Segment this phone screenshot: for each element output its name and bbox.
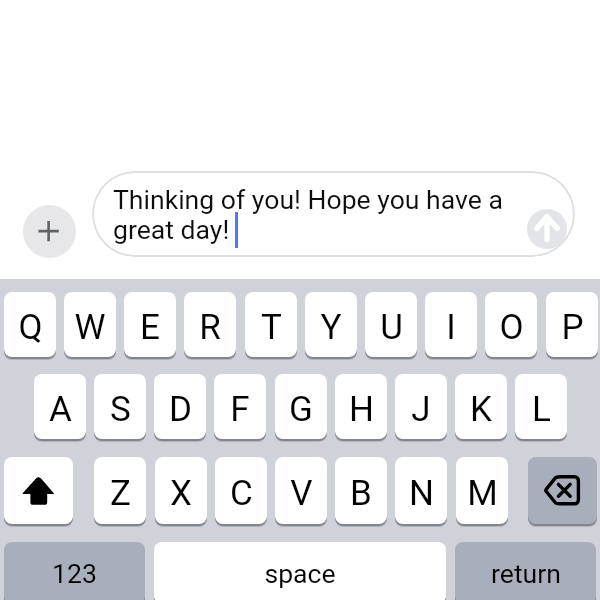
staticText: I xyxy=(446,307,456,348)
button[interactable]: Z xyxy=(94,457,146,524)
button[interactable]: S xyxy=(94,374,146,439)
button[interactable]: R xyxy=(184,292,236,357)
button[interactable]: Backspace xyxy=(528,457,597,524)
button[interactable]: Q xyxy=(4,292,56,357)
button[interactable]: X xyxy=(155,457,207,524)
button[interactable]: W xyxy=(64,292,116,357)
staticText: E xyxy=(140,307,160,348)
button[interactable]: P xyxy=(546,292,598,357)
staticText: space xyxy=(264,558,336,589)
staticText: B xyxy=(350,473,372,514)
button[interactable]: U xyxy=(365,292,417,357)
staticText: O xyxy=(499,307,524,348)
button[interactable]: L xyxy=(515,374,567,439)
button[interactable]: N xyxy=(395,457,447,524)
button[interactable]: M xyxy=(456,457,508,524)
staticText: A xyxy=(49,389,72,430)
staticText: R xyxy=(199,307,221,348)
button[interactable]: G xyxy=(275,374,327,439)
button[interactable]: D xyxy=(154,374,206,439)
staticText: F xyxy=(230,389,250,430)
button[interactable]: Thinking of you! Hope you have a great d… xyxy=(92,171,575,257)
staticText: K xyxy=(470,389,492,430)
button[interactable]: F xyxy=(214,374,266,439)
button[interactable]: C xyxy=(215,457,267,524)
button[interactable]: Send xyxy=(527,209,567,249)
button[interactable]: A xyxy=(34,374,86,439)
staticText: T xyxy=(261,307,282,348)
staticText: Q xyxy=(18,307,43,348)
staticText: Z xyxy=(110,473,131,514)
button[interactable]: B xyxy=(335,457,387,524)
button[interactable]: I xyxy=(425,292,477,357)
button[interactable]: O xyxy=(485,292,537,357)
staticText: P xyxy=(561,307,584,348)
button[interactable]: K xyxy=(455,374,507,439)
button[interactable]: J xyxy=(395,374,447,439)
staticText: W xyxy=(74,307,106,348)
staticText: return xyxy=(491,558,561,589)
staticText: L xyxy=(532,389,551,430)
staticText: C xyxy=(230,473,253,514)
staticText: J xyxy=(411,389,431,430)
staticText: U xyxy=(380,307,403,348)
staticText: M xyxy=(467,473,498,514)
staticText: V xyxy=(290,473,313,514)
button[interactable]: Y xyxy=(305,292,357,357)
staticText: G xyxy=(289,389,313,430)
staticText: 123 xyxy=(52,558,97,589)
staticText: H xyxy=(349,389,374,430)
button[interactable]: E xyxy=(124,292,176,357)
staticText: X xyxy=(170,473,192,514)
staticText: D xyxy=(169,389,192,430)
staticText: S xyxy=(110,389,131,430)
button[interactable]: 123 xyxy=(4,542,145,600)
button[interactable]: V xyxy=(275,457,327,524)
button[interactable]: T xyxy=(245,292,297,357)
button[interactable]: Add attachment xyxy=(23,205,76,258)
staticText: N xyxy=(409,473,434,514)
button[interactable]: Shift xyxy=(4,457,73,524)
button[interactable]: space xyxy=(154,542,446,600)
button[interactable]: H xyxy=(335,374,387,439)
button[interactable]: return xyxy=(455,542,596,600)
staticText: Y xyxy=(320,307,342,348)
staticText: Thinking of you! Hope you have a great d… xyxy=(113,184,503,245)
